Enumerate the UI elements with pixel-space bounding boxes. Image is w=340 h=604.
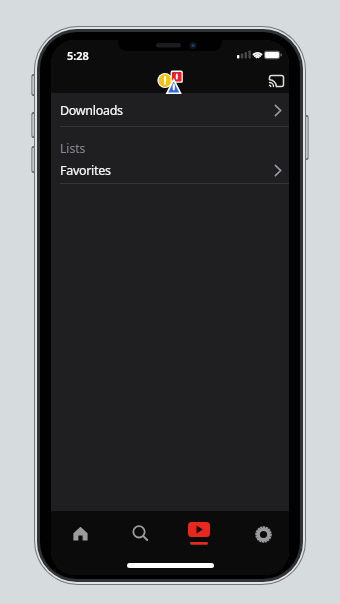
staticText: Favorites (60, 162, 111, 179)
button[interactable] (51, 511, 110, 555)
staticText: Lists (60, 140, 86, 156)
button[interactable] (229, 511, 289, 555)
staticText: Downloads (60, 102, 123, 119)
button[interactable] (110, 511, 169, 555)
button[interactable]: Favorites (51, 156, 289, 184)
button[interactable]: Downloads (51, 94, 289, 127)
button[interactable] (169, 511, 229, 555)
staticText: 5:28 (67, 48, 89, 63)
button[interactable] (267, 73, 287, 89)
